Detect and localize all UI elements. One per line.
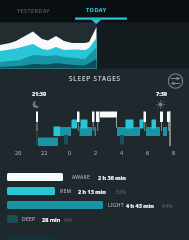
staticText: 21:39 bbox=[32, 90, 47, 97]
staticText: 30% bbox=[115, 188, 126, 195]
staticText: YESTERDAY bbox=[17, 7, 50, 14]
button[interactable] bbox=[0, 200, 189, 211]
staticText: AWAKE bbox=[72, 174, 91, 181]
button[interactable] bbox=[0, 186, 189, 197]
staticText: 7:39 bbox=[156, 90, 167, 97]
staticText: 0 bbox=[68, 149, 72, 156]
staticText: 6 bbox=[146, 149, 150, 156]
button[interactable]: TODAY bbox=[75, 0, 118, 18]
staticText: 2 h 36 min bbox=[98, 174, 126, 181]
staticText: 8 bbox=[172, 149, 176, 156]
button[interactable] bbox=[0, 214, 189, 225]
staticText: 4 bbox=[120, 149, 124, 156]
staticText: REM bbox=[60, 188, 72, 195]
staticText: 2 bbox=[94, 149, 98, 156]
button[interactable] bbox=[0, 172, 189, 183]
staticText: 64% bbox=[162, 202, 173, 209]
staticText: 22 bbox=[41, 149, 48, 156]
staticText: 20 bbox=[15, 149, 22, 156]
staticText: TODAY bbox=[86, 6, 107, 13]
staticText: SLEEP STAGES bbox=[69, 74, 121, 83]
staticText: DEEP bbox=[22, 216, 36, 223]
staticText: LIGHT bbox=[108, 202, 124, 209]
staticText: 4 h 43 min bbox=[126, 202, 154, 209]
button[interactable] bbox=[165, 71, 186, 91]
staticText: 6% bbox=[64, 216, 72, 223]
staticText: 28 min bbox=[42, 216, 61, 223]
button[interactable]: YESTERDAY bbox=[12, 0, 54, 20]
staticText: 2 h 13 min bbox=[78, 188, 106, 195]
